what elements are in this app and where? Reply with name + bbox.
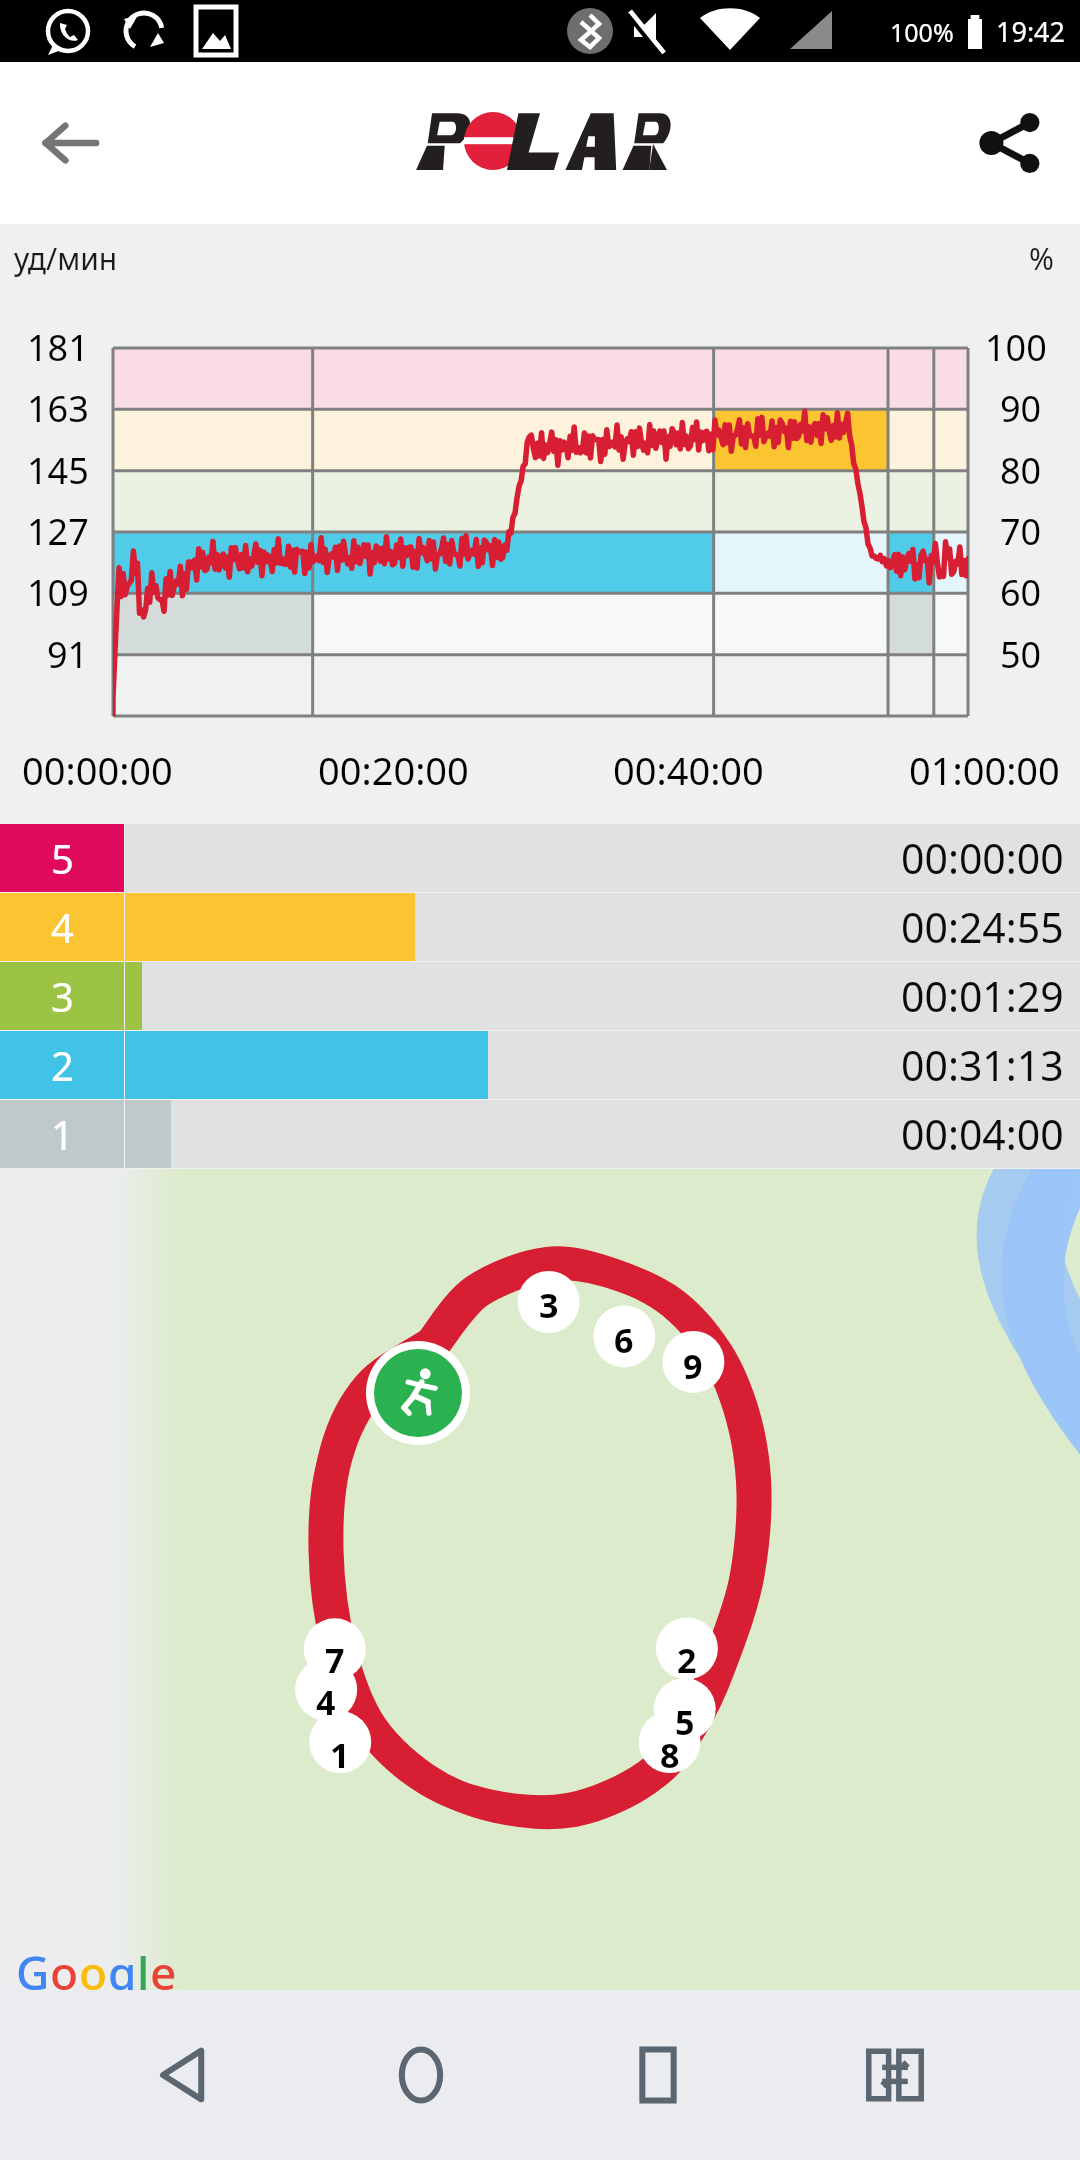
staticText: 91: [47, 630, 89, 679]
staticText: o: [50, 1941, 79, 2004]
button[interactable]: 8: [639, 1724, 701, 1786]
button[interactable]: Recents: [583, 1990, 733, 2160]
button[interactable]: Switch app: [820, 1990, 970, 2160]
button[interactable]: 1: [0, 1100, 1080, 1168]
staticText: 00:20:00: [318, 744, 469, 796]
staticText: 00:24:55: [901, 899, 1064, 955]
staticText: 9: [683, 1343, 703, 1389]
staticText: e: [150, 1941, 177, 2004]
button[interactable]: 3: [518, 1274, 580, 1336]
staticText: 5: [51, 831, 74, 885]
staticText: 5: [675, 1699, 695, 1745]
staticText: 7: [325, 1637, 345, 1683]
button[interactable]: 9: [662, 1335, 724, 1397]
staticText: 4: [316, 1679, 336, 1725]
staticText: 00:04:00: [901, 1106, 1064, 1162]
staticText: 8: [660, 1732, 680, 1778]
button[interactable]: 4: [295, 1671, 357, 1733]
button[interactable]: Home: [346, 1990, 496, 2160]
staticText: 3: [51, 969, 74, 1023]
button[interactable]: 3: [0, 962, 1080, 1030]
staticText: 60: [1000, 568, 1042, 617]
staticText: 100%: [890, 15, 954, 49]
staticText: 181: [27, 323, 89, 372]
staticText: 1: [51, 1107, 74, 1161]
staticText: %: [1029, 238, 1054, 279]
staticText: 00:01:29: [901, 968, 1064, 1024]
staticText: 00:00:00: [22, 744, 173, 796]
button[interactable]: 4: [0, 893, 1080, 961]
button[interactable]: 1: [309, 1724, 371, 1786]
staticText: 2: [51, 1038, 74, 1092]
staticText: 00:00:00: [901, 830, 1064, 886]
staticText: 6: [614, 1317, 634, 1363]
staticText: 90: [1000, 384, 1042, 433]
staticText: 00:40:00: [613, 744, 764, 796]
staticText: l: [137, 1941, 150, 2004]
button[interactable]: 2: [656, 1629, 718, 1691]
staticText: 3: [539, 1282, 559, 1328]
staticText: 2: [677, 1637, 697, 1683]
button[interactable]: 5: [0, 824, 1080, 892]
staticText: 00:31:13: [901, 1037, 1064, 1093]
staticText: o: [79, 1941, 108, 2004]
staticText: 70: [1000, 507, 1042, 556]
staticText: 127: [27, 507, 89, 556]
staticText: G: [16, 1941, 50, 2004]
staticText: 19:42: [996, 13, 1066, 50]
button[interactable]: Start point: [366, 1341, 470, 1445]
staticText: 80: [1000, 446, 1042, 495]
button[interactable]: Back: [0, 73, 140, 213]
staticText: 4: [51, 900, 74, 954]
staticText: 50: [1000, 630, 1042, 679]
staticText: 100: [985, 323, 1047, 372]
staticText: 1: [330, 1732, 350, 1778]
button[interactable]: 5: [654, 1691, 716, 1753]
staticText: 163: [27, 384, 89, 433]
button[interactable]: Share: [940, 73, 1080, 213]
button[interactable]: 7: [304, 1629, 366, 1691]
staticText: 01:00:00: [909, 744, 1060, 796]
button[interactable]: 6: [593, 1309, 655, 1371]
staticText: g: [108, 1941, 137, 2004]
button[interactable]: Back: [110, 1990, 260, 2160]
staticText: 145: [27, 446, 89, 495]
staticText: 109: [27, 568, 89, 617]
button[interactable]: 2: [0, 1031, 1080, 1099]
staticText: уд/мин: [14, 238, 118, 279]
